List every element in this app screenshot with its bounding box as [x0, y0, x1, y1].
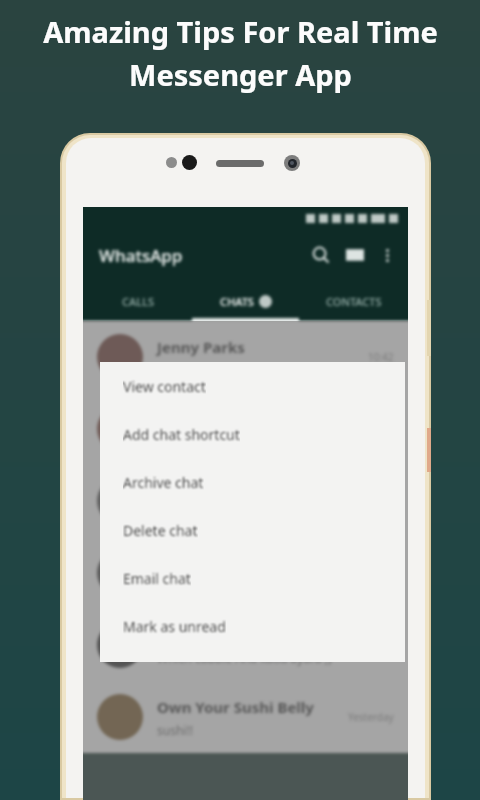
staticText: Mark as unread [123, 617, 226, 636]
staticText: Jenny Parks [157, 337, 245, 357]
button[interactable]: Mom [83, 393, 408, 465]
staticText: Email chat [123, 569, 191, 588]
staticText: Amazing Tips For Real Time [43, 12, 438, 51]
staticText: Add chat shortcut [123, 425, 240, 444]
button[interactable]: Delete chat [100, 506, 405, 554]
staticText: Yesterday [348, 710, 394, 724]
staticText: Delete chat [123, 521, 198, 540]
staticText: Own Your Sushi Belly [157, 697, 314, 717]
staticText: Work Group [157, 481, 247, 501]
button[interactable]: Mark as unread [100, 602, 405, 650]
staticText: Archive chat [123, 473, 204, 492]
staticText: Agnes El Khoury [157, 625, 278, 645]
staticText: View contact [123, 377, 206, 396]
button[interactable]: View contact [100, 362, 405, 410]
staticText: 10:42 [368, 350, 394, 364]
button[interactable]: Jenny Parks [83, 321, 408, 393]
button[interactable]: Work Group [83, 465, 408, 537]
button[interactable]: CONTACTS [300, 281, 408, 321]
button[interactable]: Archive chat [100, 458, 405, 506]
button[interactable]: Alex [83, 537, 408, 609]
button[interactable]: Camera [338, 238, 372, 272]
button[interactable]: More options [372, 240, 402, 270]
button[interactable]: Email chat [100, 554, 405, 602]
staticText: CALLS [122, 294, 154, 309]
button[interactable]: Add chat shortcut [100, 410, 405, 458]
staticText: WhatsApp [99, 244, 183, 267]
staticText: Thanks a lot [157, 578, 226, 594]
button[interactable]: Search [304, 238, 338, 272]
button[interactable]: Agnes El Khoury [83, 609, 408, 681]
staticText: CONTACTS [326, 294, 382, 309]
button[interactable]: CHATS [192, 281, 300, 321]
staticText: sushi!! [157, 722, 193, 738]
staticText: CHATS [220, 294, 254, 309]
staticText: Messenger App [129, 55, 352, 94]
staticText: Which cabbie Ana katla ayara ;) [157, 650, 332, 666]
staticText: Call me when free [157, 434, 259, 450]
button[interactable]: Own Your Sushi Belly [83, 681, 408, 753]
button[interactable]: CALLS [83, 281, 192, 321]
